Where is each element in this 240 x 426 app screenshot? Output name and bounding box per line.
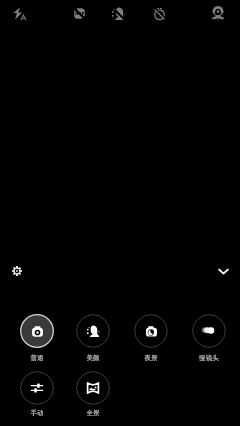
staticText: 普通 [10,354,64,365]
staticText: 全景 [66,409,120,420]
staticText: 手动 [10,409,64,420]
staticText: 夜景 [124,354,178,365]
button[interactable]: Timer off [145,0,173,27]
button[interactable] [124,314,178,364]
button[interactable] [182,314,236,364]
button[interactable]: Flash auto [5,0,33,27]
button[interactable] [10,314,64,364]
staticText: 美颜 [66,354,120,365]
button[interactable] [66,371,120,421]
staticText: 慢镜头 [182,354,236,365]
button[interactable]: Beauty off [104,0,132,27]
button[interactable]: Collapse mode list [209,257,237,285]
button[interactable] [66,314,120,364]
button[interactable]: Filters [204,0,232,27]
button[interactable]: HDR off [65,0,93,27]
button[interactable]: Settings [3,257,31,285]
button[interactable] [10,371,64,421]
